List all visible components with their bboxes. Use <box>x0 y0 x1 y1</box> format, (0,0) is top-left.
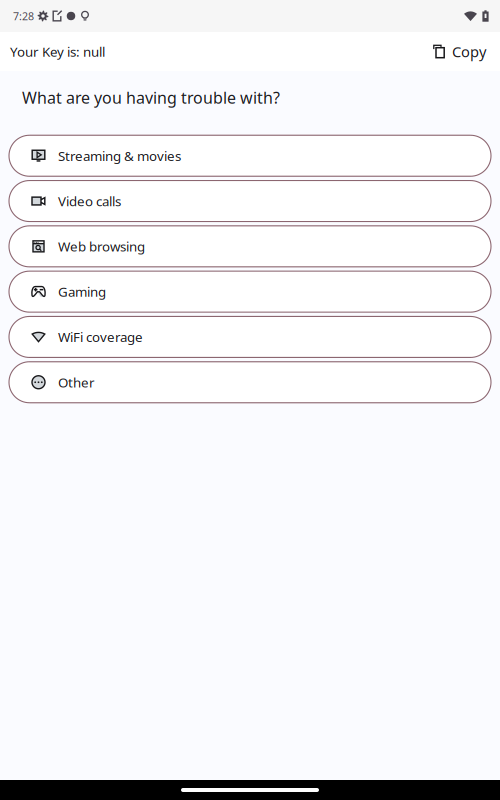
staticText: 7:28 <box>13 9 34 23</box>
staticText: Streaming & movies <box>58 147 181 165</box>
button[interactable]: WiFi coverage <box>9 316 491 357</box>
staticText: Your Key is: null <box>10 43 105 60</box>
staticText: WiFi coverage <box>58 328 143 346</box>
staticText: Gaming <box>58 283 106 300</box>
staticText: Other <box>58 373 95 391</box>
staticText: Copy <box>452 42 486 61</box>
button[interactable]: Copy <box>424 35 495 68</box>
button[interactable]: Web browsing <box>9 226 491 267</box>
button[interactable]: Streaming & movies <box>9 135 491 176</box>
button[interactable]: Video calls <box>9 180 491 221</box>
button[interactable]: Gaming <box>9 271 491 312</box>
staticText: Web browsing <box>58 237 145 255</box>
staticText: Video calls <box>58 192 121 210</box>
staticText: What are you having trouble with? <box>22 87 280 108</box>
button[interactable]: Other <box>9 362 491 403</box>
